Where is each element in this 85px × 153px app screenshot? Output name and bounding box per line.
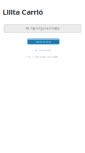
staticText: Con la tecnología de Blogger. [26, 55, 59, 58]
staticText: Lilita Carrió [2, 7, 43, 17]
staticText: Página principal [35, 40, 51, 43]
button[interactable]: Ver versión web [0, 48, 85, 51]
button[interactable]: Página principal [27, 39, 59, 44]
staticText: No hay ninguna entrada. [25, 27, 59, 30]
staticText: Ver versión web [34, 48, 50, 51]
